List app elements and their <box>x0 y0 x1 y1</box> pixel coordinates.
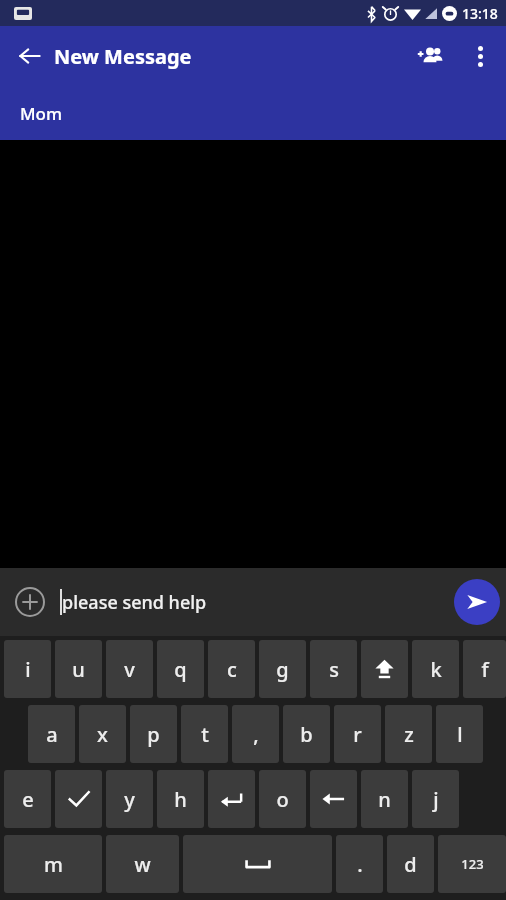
staticText: e <box>22 786 34 813</box>
staticText: z <box>404 721 414 748</box>
button[interactable]: More options <box>458 34 502 78</box>
button[interactable]: Mom <box>0 86 506 140</box>
staticText: x <box>97 721 108 748</box>
staticText: n <box>378 786 391 813</box>
button[interactable]: Enter <box>208 770 255 828</box>
staticText: a <box>46 721 58 748</box>
staticText: w <box>134 851 151 878</box>
staticText: , <box>253 721 259 748</box>
button[interactable]: x <box>79 705 126 763</box>
staticText: c <box>227 656 237 683</box>
staticText: p <box>147 721 160 748</box>
button[interactable]: o <box>259 770 306 828</box>
staticText: b <box>300 721 313 748</box>
button[interactable]: f <box>463 640 506 698</box>
staticText: v <box>124 656 135 683</box>
button[interactable]: b <box>283 705 330 763</box>
button[interactable]: l <box>436 705 483 763</box>
staticText: s <box>329 656 339 683</box>
button[interactable]: r <box>334 705 381 763</box>
staticText: Mom <box>20 102 63 125</box>
staticText: New Message <box>54 43 192 70</box>
staticText: u <box>72 656 85 683</box>
button[interactable]: g <box>259 640 306 698</box>
staticText: f <box>481 656 489 683</box>
staticText: h <box>174 786 187 813</box>
button[interactable]: a <box>28 705 75 763</box>
button[interactable]: i <box>4 640 51 698</box>
staticText: i <box>25 656 31 683</box>
staticText: y <box>124 786 135 813</box>
button[interactable]: Add attachment <box>6 578 54 626</box>
button[interactable]: n <box>361 770 408 828</box>
staticText: k <box>430 656 442 683</box>
button[interactable]: j <box>412 770 459 828</box>
button[interactable]: p <box>130 705 177 763</box>
button[interactable]: Add people <box>406 32 454 80</box>
button[interactable]: q <box>157 640 204 698</box>
button[interactable]: v <box>106 640 153 698</box>
button[interactable]: e <box>4 770 51 828</box>
staticText: j <box>433 786 439 813</box>
staticText: please send help <box>62 590 207 615</box>
button[interactable]: z <box>385 705 432 763</box>
button[interactable]: 123 <box>438 835 506 893</box>
button[interactable]: k <box>412 640 459 698</box>
button[interactable]: h <box>157 770 204 828</box>
button[interactable]: t <box>181 705 228 763</box>
button[interactable]: u <box>55 640 102 698</box>
staticText: g <box>276 656 289 683</box>
button[interactable]: d <box>387 835 434 893</box>
button[interactable]: Confirm <box>55 770 102 828</box>
staticText: r <box>353 721 362 748</box>
button[interactable]: Back <box>6 32 54 80</box>
staticText: m <box>44 851 63 878</box>
button[interactable]: Backspace <box>310 770 357 828</box>
button[interactable]: Send <box>454 579 500 625</box>
button[interactable]: s <box>310 640 357 698</box>
staticText: . <box>357 851 363 878</box>
staticText: d <box>404 851 417 878</box>
button[interactable]: m <box>4 835 102 893</box>
staticText: l <box>457 721 463 748</box>
staticText: 13:18 <box>462 4 498 23</box>
button[interactable]: w <box>106 835 179 893</box>
staticText: o <box>276 786 289 813</box>
staticText: t <box>201 721 209 748</box>
button[interactable]: Space <box>183 835 332 893</box>
button[interactable]: Shift <box>361 640 408 698</box>
staticText: q <box>174 656 187 683</box>
button[interactable]: . <box>336 835 383 893</box>
button[interactable]: y <box>106 770 153 828</box>
button[interactable]: c <box>208 640 255 698</box>
staticText: 123 <box>461 855 484 873</box>
button[interactable]: , <box>232 705 279 763</box>
